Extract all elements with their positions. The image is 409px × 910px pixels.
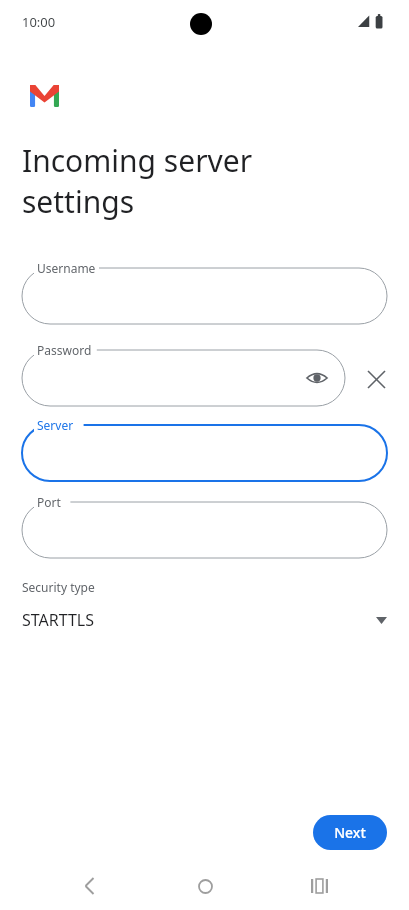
button[interactable]: Show password — [301, 362, 333, 394]
button[interactable]: Clear — [360, 363, 392, 395]
button[interactable]: Recent apps — [295, 862, 343, 910]
button[interactable] — [22, 502, 387, 558]
staticText: Next — [334, 823, 366, 842]
button[interactable] — [22, 425, 387, 481]
staticText: STARTTLS — [22, 609, 95, 631]
staticText: Server — [37, 417, 74, 433]
staticText: 10:00 — [22, 13, 56, 31]
button[interactable]: Home — [181, 862, 229, 910]
staticText: Username — [37, 260, 96, 276]
button[interactable]: Security type — [0, 575, 409, 637]
staticText: Port — [37, 494, 61, 510]
staticText: Password — [37, 342, 92, 358]
button[interactable]: Show password — [22, 350, 345, 406]
button[interactable]: Next — [313, 815, 387, 850]
staticText: Security type — [22, 579, 95, 595]
staticText: Incoming server settings — [22, 140, 253, 222]
button[interactable] — [22, 268, 387, 324]
button[interactable]: Back — [66, 862, 114, 910]
